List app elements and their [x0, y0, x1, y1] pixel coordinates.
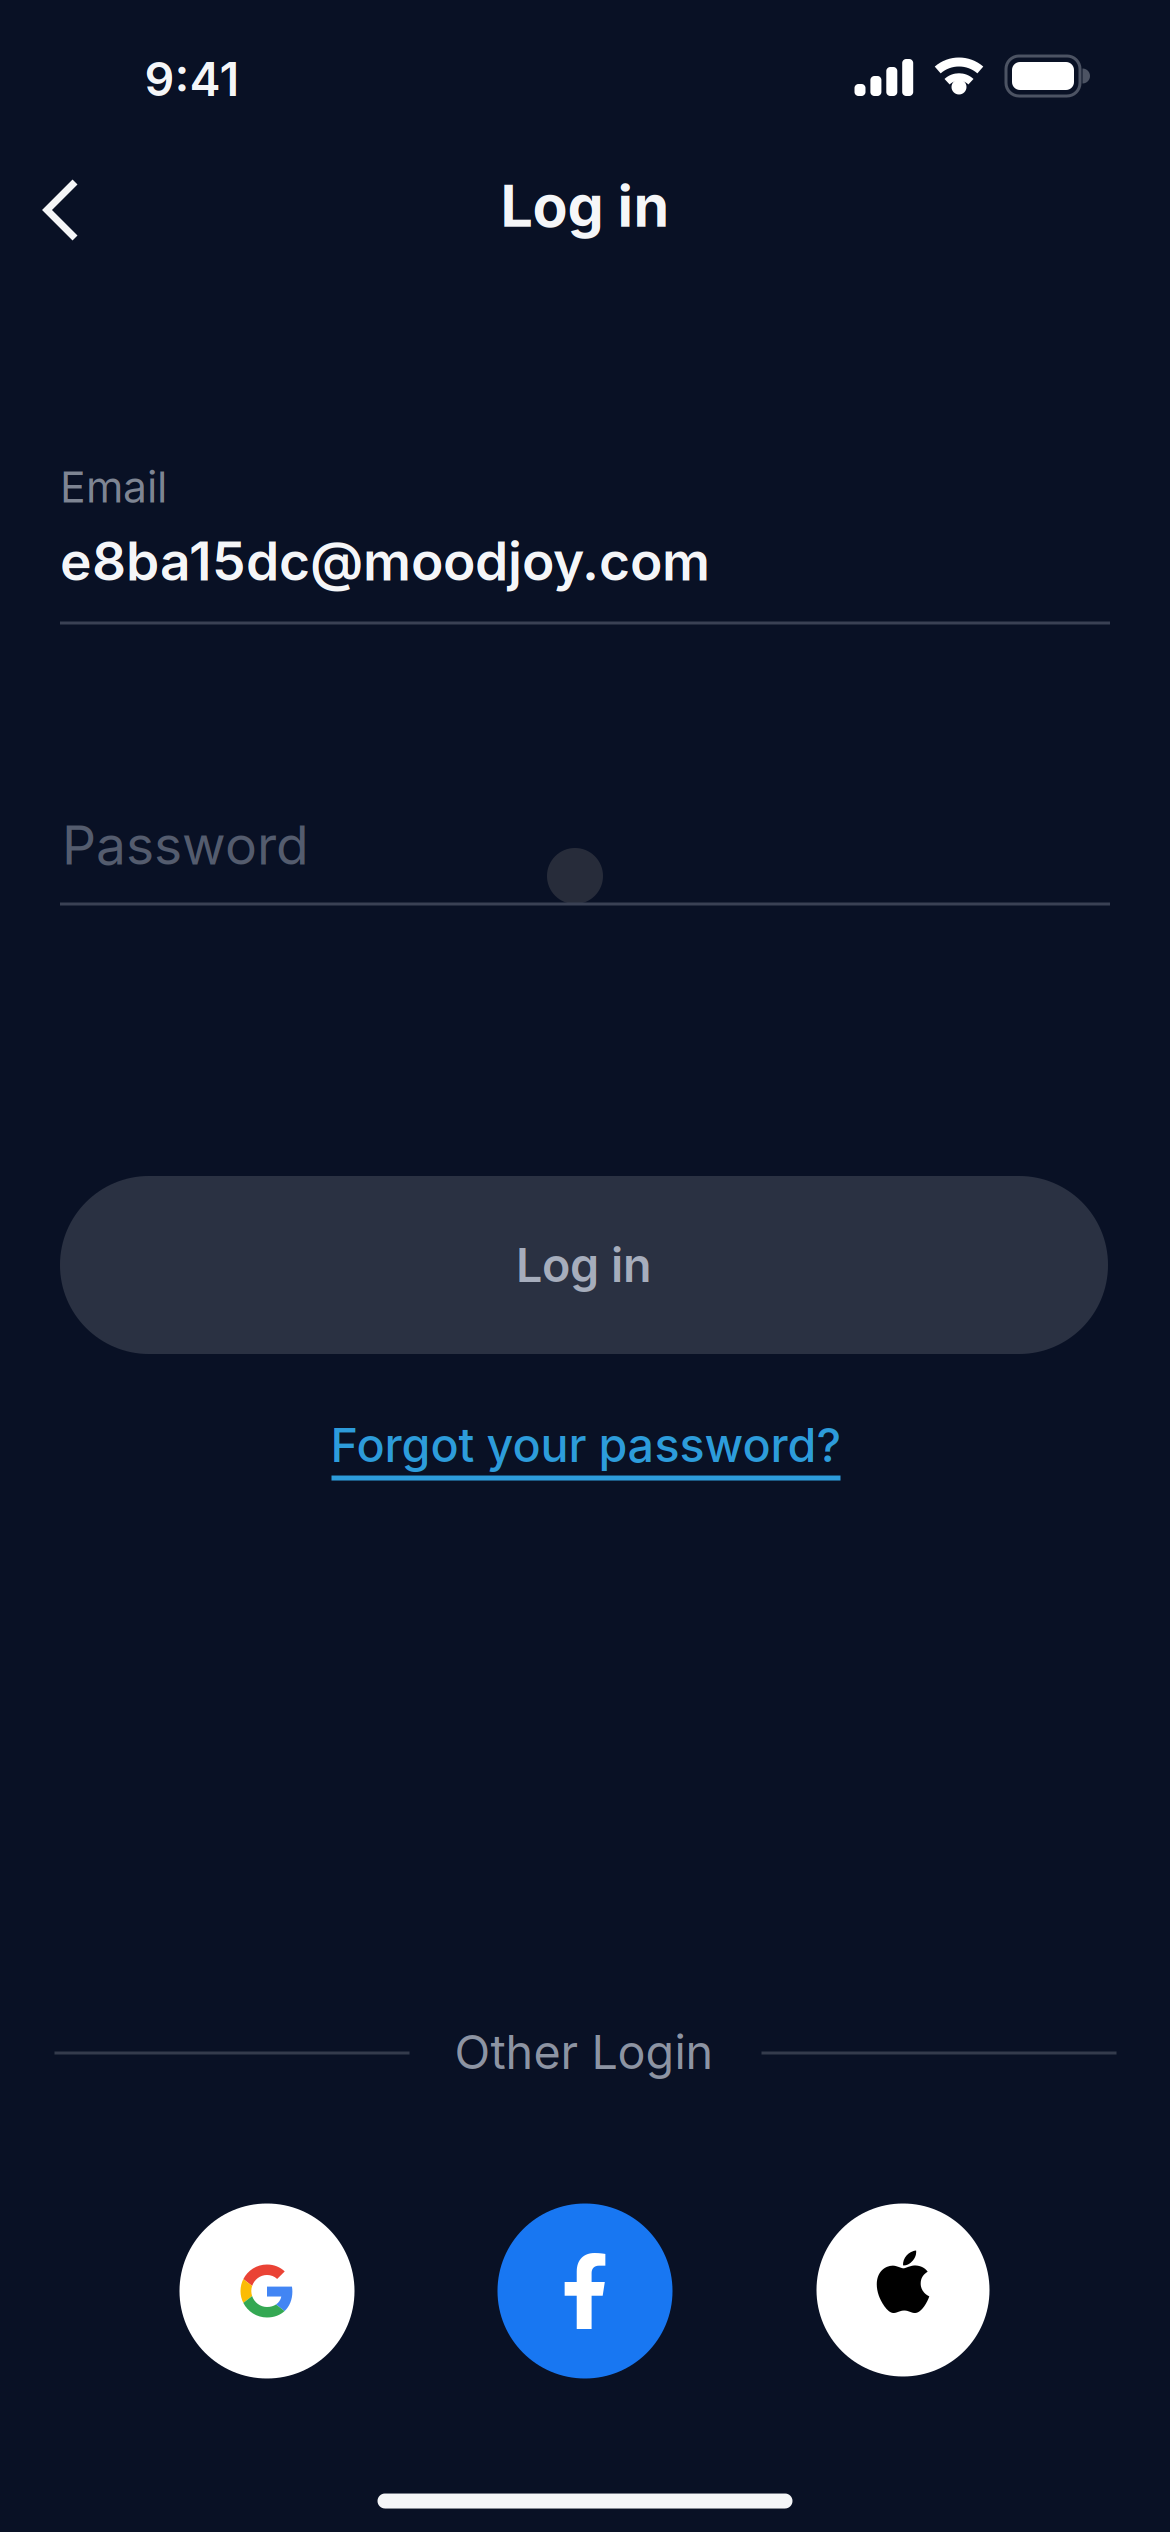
staticText: e8ba15dc@moodjoy.com — [60, 529, 710, 592]
staticText: Password — [62, 813, 309, 876]
button[interactable]: Log in — [60, 1176, 1108, 1354]
staticText: Log in — [500, 172, 669, 240]
staticText: 9:41 — [144, 51, 239, 107]
button[interactable]: Forgot your password? — [330, 1417, 841, 1481]
staticText: Email — [60, 462, 167, 512]
button[interactable] — [179, 2203, 354, 2378]
staticText: Other Login — [454, 2024, 713, 2080]
staticText: Forgot your password? — [330, 1417, 841, 1473]
button[interactable] — [42, 179, 82, 241]
button[interactable] — [497, 2203, 672, 2378]
button[interactable] — [816, 2203, 989, 2376]
staticText: Log in — [516, 1237, 652, 1293]
